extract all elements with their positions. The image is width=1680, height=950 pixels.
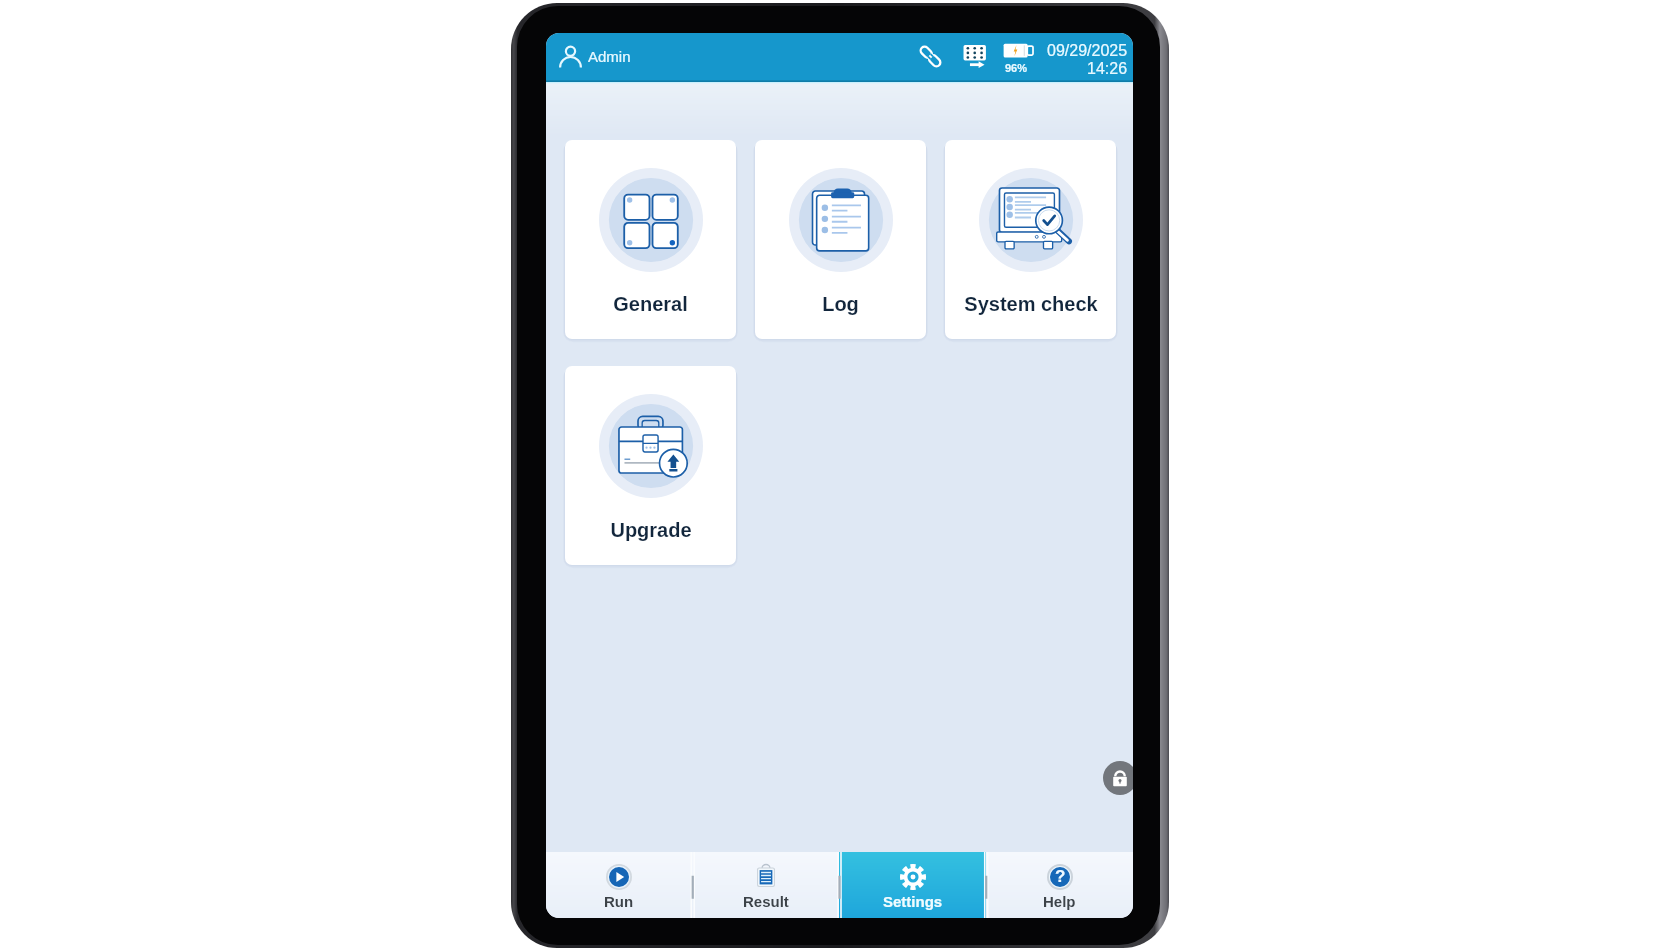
button[interactable]: General	[565, 140, 736, 339]
button[interactable]: Link	[917, 43, 944, 70]
staticText: Result	[743, 893, 789, 910]
button[interactable]: Settings	[839, 852, 986, 918]
staticText: ?	[1055, 867, 1066, 886]
staticText: System check	[964, 293, 1098, 315]
staticText: Upgrade	[610, 519, 692, 541]
staticText: Log	[822, 293, 859, 315]
staticText: 96%	[1005, 62, 1028, 74]
staticText: 14:26	[1087, 60, 1128, 78]
button[interactable]: Lock screen	[1103, 761, 1133, 795]
button[interactable]: Run	[546, 852, 692, 918]
staticText: Settings	[883, 893, 943, 910]
button[interactable]: Log	[755, 140, 926, 339]
staticText: Help	[1043, 893, 1076, 910]
staticText: 09/29/2025	[1047, 42, 1128, 60]
staticText: Run	[604, 893, 634, 910]
staticText: Admin	[588, 48, 631, 65]
button[interactable]: System check	[945, 140, 1116, 339]
staticText: General	[613, 293, 688, 315]
button[interactable]: Battery 96 percent	[1003, 40, 1034, 74]
button[interactable]: Result	[692, 852, 839, 918]
button[interactable]: Upgrade	[565, 366, 736, 565]
button[interactable]: Keypad	[961, 42, 989, 70]
button[interactable]: ?	[986, 852, 1133, 918]
button[interactable]: Account	[559, 44, 582, 69]
